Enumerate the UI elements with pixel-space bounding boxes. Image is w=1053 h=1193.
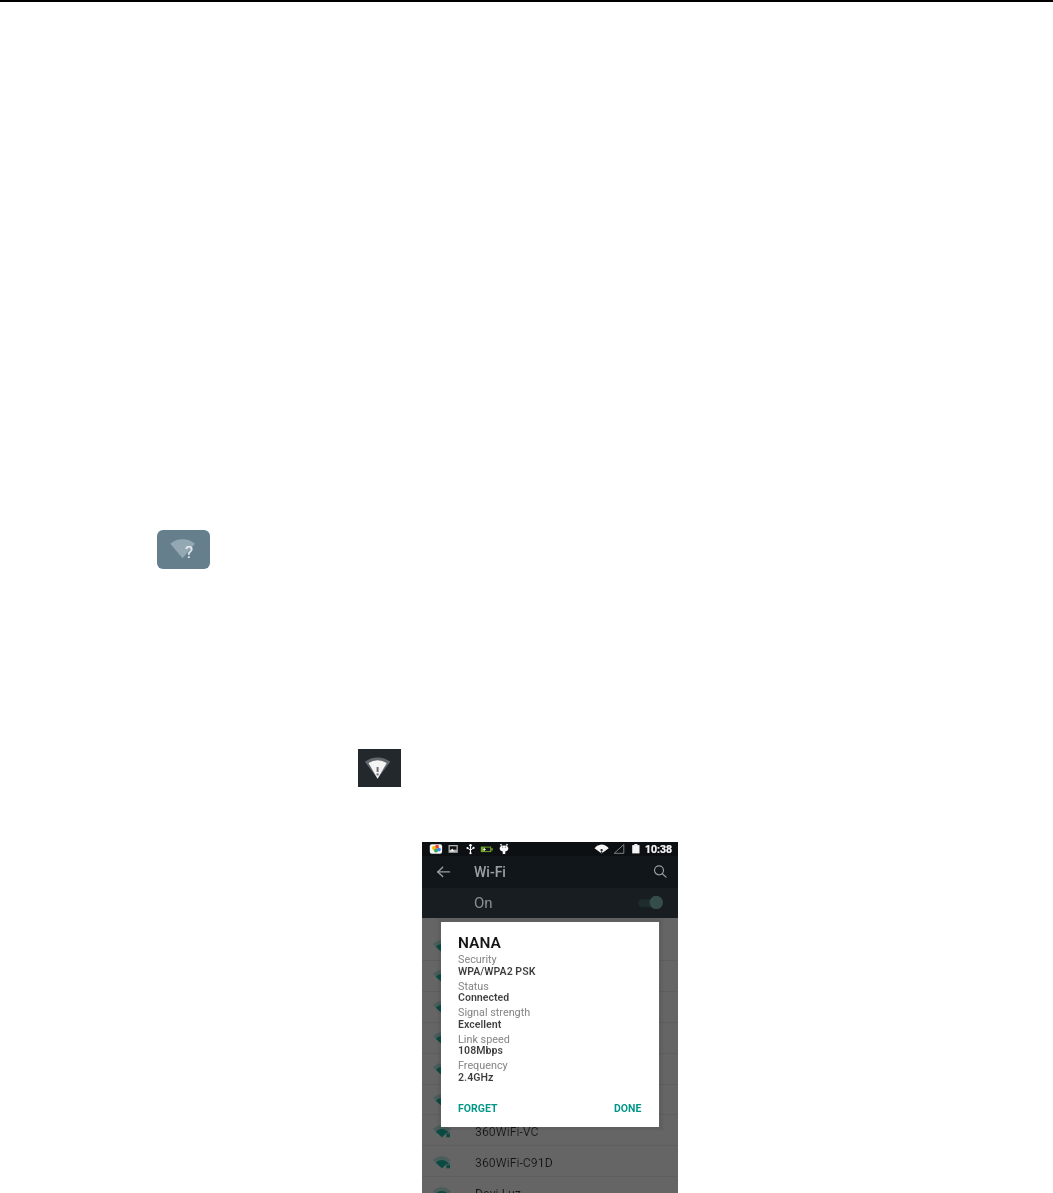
- staticText: Signal strength: [458, 1006, 531, 1019]
- button[interactable]: Wi-Fi unknown: [157, 530, 210, 569]
- staticText: WPA/WPA2 PSK: [458, 965, 536, 977]
- button[interactable]: On: [422, 888, 678, 918]
- staticText: Frequency: [458, 1059, 508, 1072]
- button[interactable]: NANA: [441, 922, 659, 1127]
- staticText: Status: [458, 980, 489, 993]
- button[interactable]: [422, 1053, 678, 1084]
- staticText: Link speed: [458, 1033, 510, 1046]
- button[interactable]: Search: [644, 856, 674, 888]
- staticText: Excellent: [458, 1018, 502, 1030]
- button[interactable]: [422, 1084, 678, 1115]
- staticText: 10:38: [645, 843, 673, 855]
- button[interactable]: Back: [428, 856, 459, 888]
- staticText: Wi-Fi: [474, 864, 506, 880]
- staticText: 360WiFi-VC: [475, 1125, 539, 1139]
- button[interactable]: FORGET: [458, 1102, 498, 1114]
- staticText: On: [474, 894, 493, 912]
- button[interactable]: 360WiFi-C91D: [422, 1146, 678, 1177]
- staticText: 2.4GHz: [458, 1071, 494, 1083]
- button[interactable]: Davi Luz: [422, 1177, 678, 1193]
- staticText: FORGET: [458, 1102, 498, 1114]
- button[interactable]: [422, 991, 678, 1022]
- button[interactable]: DONE: [614, 1102, 642, 1114]
- staticText: Security: [458, 953, 497, 966]
- staticText: ?: [185, 542, 194, 562]
- staticText: Connected: [458, 991, 510, 1003]
- staticText: DONE: [614, 1102, 642, 1114]
- staticText: NANA: [458, 934, 501, 952]
- button[interactable]: [422, 930, 678, 961]
- staticText: 360WiFi-C91D: [475, 1156, 553, 1170]
- button[interactable]: 360WiFi-VC: [422, 1115, 678, 1146]
- button[interactable]: [422, 1022, 678, 1053]
- button[interactable]: Wi-Fi: [358, 749, 401, 787]
- button[interactable]: [422, 960, 678, 991]
- staticText: Davi Luz: [475, 1187, 521, 1193]
- staticText: 108Mbps: [458, 1044, 503, 1056]
